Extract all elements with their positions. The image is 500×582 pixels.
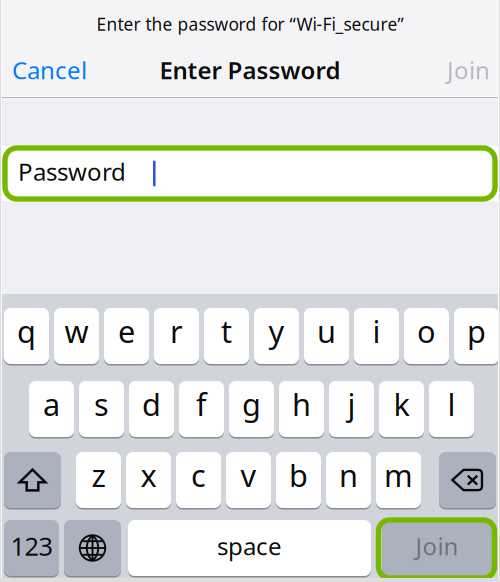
- button[interactable]: z: [76, 451, 121, 509]
- button[interactable]: r: [154, 307, 199, 365]
- staticText: r: [170, 311, 183, 351]
- button[interactable]: o: [404, 307, 449, 365]
- button[interactable]: g: [229, 380, 274, 438]
- staticText: g: [242, 384, 261, 424]
- staticText: space: [217, 530, 282, 562]
- button[interactable]: Delete: [439, 451, 496, 509]
- staticText: Enter the password for “Wi-Fi_secure”: [96, 12, 403, 35]
- button[interactable]: d: [129, 380, 174, 438]
- button[interactable]: n: [326, 451, 371, 509]
- staticText: s: [94, 384, 109, 424]
- button[interactable]: Password: [0, 146, 500, 201]
- staticText: Join: [447, 54, 490, 86]
- staticText: Password: [18, 156, 126, 187]
- staticText: b: [289, 455, 308, 495]
- button[interactable]: v: [226, 451, 271, 509]
- button[interactable]: Join: [410, 48, 490, 92]
- button[interactable]: b: [276, 451, 321, 509]
- staticText: l: [447, 384, 455, 424]
- staticText: Join: [415, 530, 458, 562]
- staticText: x: [140, 455, 156, 495]
- button[interactable]: i: [354, 307, 399, 365]
- button[interactable]: q: [4, 307, 49, 365]
- button[interactable]: Join: [382, 519, 492, 577]
- button[interactable]: k: [379, 380, 424, 438]
- staticText: u: [317, 311, 336, 351]
- staticText: t: [221, 311, 232, 351]
- staticText: d: [142, 384, 161, 424]
- button[interactable]: Cancel: [12, 48, 112, 92]
- button[interactable]: a: [29, 380, 74, 438]
- staticText: Enter Password: [159, 54, 340, 86]
- button[interactable]: p: [454, 307, 499, 365]
- button[interactable]: e: [104, 307, 149, 365]
- staticText: f: [196, 384, 207, 424]
- button[interactable]: Shift: [4, 451, 61, 509]
- staticText: p: [467, 311, 486, 351]
- button[interactable]: y: [254, 307, 299, 365]
- button[interactable]: j: [329, 380, 374, 438]
- staticText: m: [384, 455, 413, 495]
- staticText: c: [191, 455, 206, 495]
- button[interactable]: c: [176, 451, 221, 509]
- staticText: z: [91, 455, 105, 495]
- staticText: h: [292, 384, 311, 424]
- staticText: y: [268, 311, 284, 351]
- staticText: w: [64, 311, 88, 351]
- staticText: e: [118, 311, 135, 351]
- staticText: Cancel: [12, 54, 87, 86]
- button[interactable]: x: [126, 451, 171, 509]
- button[interactable]: u: [304, 307, 349, 365]
- button[interactable]: h: [279, 380, 324, 438]
- button[interactable]: m: [376, 451, 421, 509]
- staticText: q: [17, 311, 36, 351]
- button[interactable]: space: [128, 519, 371, 577]
- staticText: o: [417, 311, 436, 351]
- button[interactable]: t: [204, 307, 249, 365]
- staticText: k: [393, 384, 409, 424]
- staticText: j: [347, 384, 355, 424]
- button[interactable]: f: [179, 380, 224, 438]
- staticText: v: [240, 455, 256, 495]
- staticText: a: [43, 384, 60, 424]
- staticText: n: [339, 455, 358, 495]
- staticText: 123: [10, 529, 52, 563]
- staticText: i: [372, 311, 380, 351]
- button[interactable]: Next keyboard: [64, 519, 121, 577]
- button[interactable]: s: [79, 380, 124, 438]
- button[interactable]: 123: [4, 519, 59, 577]
- button[interactable]: l: [429, 380, 474, 438]
- button[interactable]: w: [54, 307, 99, 365]
